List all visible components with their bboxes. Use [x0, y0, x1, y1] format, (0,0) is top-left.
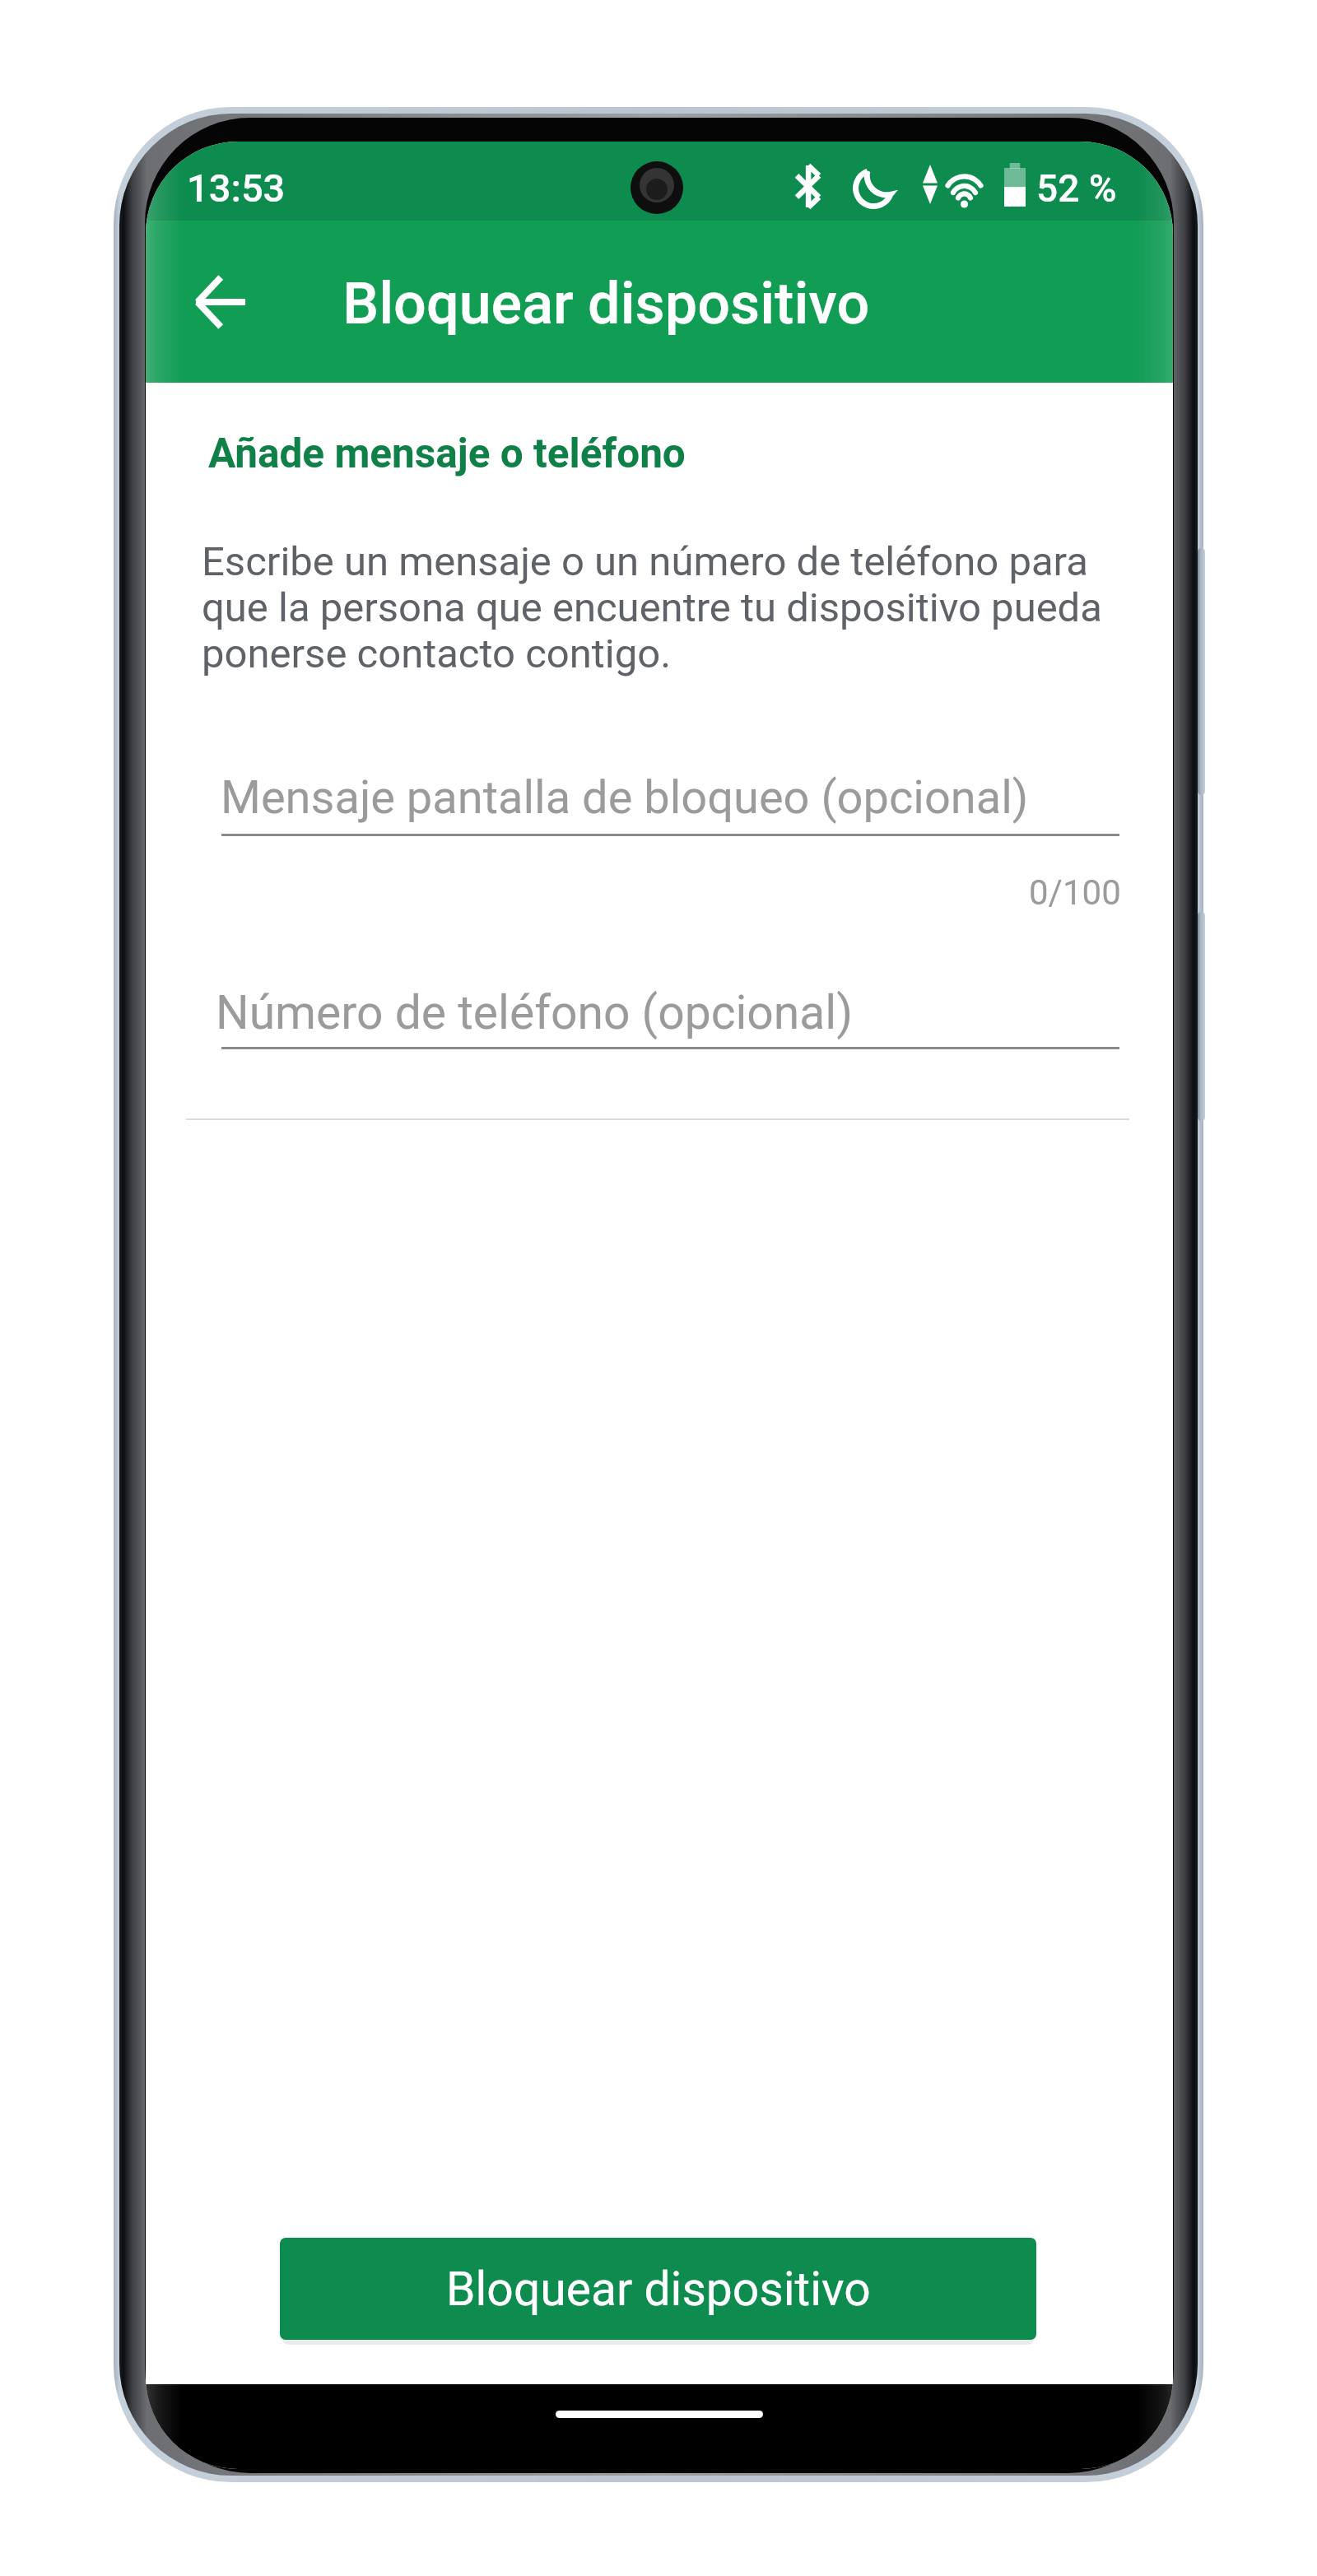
staticText: 0/100 [1029, 872, 1121, 913]
staticText: Añade mensaje o teléfono [208, 430, 686, 477]
staticText: Bloquear dispositivo [342, 270, 870, 337]
staticText: Número de teléfono (opcional) [216, 985, 854, 1040]
staticText: 13:53 [187, 165, 286, 211]
staticText: 52 % [1036, 166, 1117, 211]
button[interactable]: Bloquear dispositivo [280, 2238, 1036, 2340]
staticText: Mensaje pantalla de bloqueo (opcional) [221, 770, 1029, 825]
staticText: Escribe un mensaje o un número de teléfo… [202, 538, 1111, 677]
button[interactable]: Back [174, 256, 266, 348]
staticText: Bloquear dispositivo [446, 2262, 871, 2317]
